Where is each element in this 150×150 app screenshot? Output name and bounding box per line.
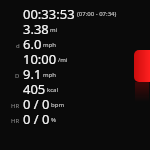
button[interactable]: 3.38 <box>0 20 150 35</box>
staticText: 10:00 <box>23 50 57 65</box>
staticText: 00:33:53 <box>23 5 75 20</box>
staticText: D <box>15 72 20 80</box>
button[interactable]: 00:33:53 <box>0 5 150 20</box>
staticText: HR <box>11 102 20 110</box>
button[interactable]: 10:00 <box>0 50 150 65</box>
button[interactable]: D <box>0 65 150 80</box>
staticText: 9.1 <box>23 65 42 80</box>
staticText: kcal <box>47 86 58 94</box>
staticText: d <box>16 42 20 50</box>
staticText: mph <box>43 71 57 79</box>
button[interactable]: HR <box>0 110 150 125</box>
staticText: 6.0 <box>23 35 42 50</box>
button[interactable]: HR <box>0 95 150 110</box>
staticText: /mi <box>58 56 68 64</box>
button[interactable]: d <box>0 35 150 50</box>
staticText: 3.38 <box>23 20 49 35</box>
staticText: (07:00 - 07:34) <box>77 10 117 18</box>
staticText: 405 <box>23 80 46 95</box>
staticText: HR <box>11 117 20 125</box>
staticText: bpm <box>51 101 64 109</box>
staticText: mi <box>50 26 58 34</box>
button[interactable]: Stop workout <box>134 50 150 82</box>
staticText: mph <box>43 41 57 49</box>
staticText: 0 / 0 <box>23 95 50 110</box>
staticText: % <box>51 116 56 124</box>
button[interactable]: 405 <box>0 80 150 95</box>
staticText: 0 / 0 <box>23 110 50 125</box>
